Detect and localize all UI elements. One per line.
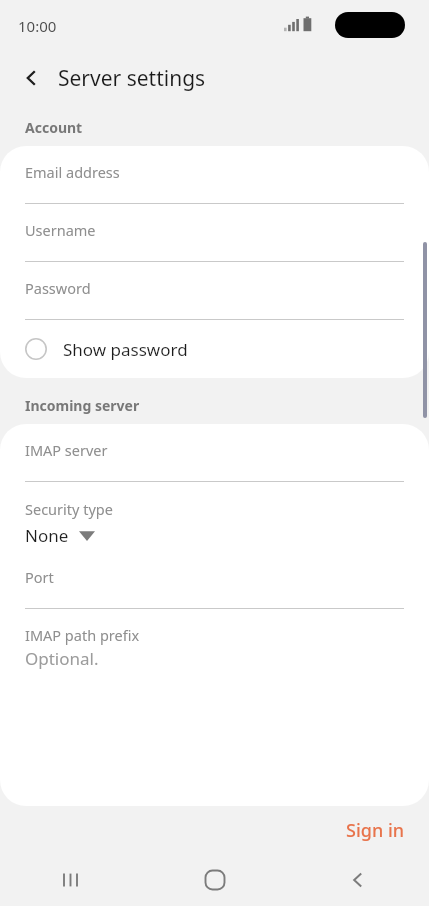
- staticText: Username: [25, 220, 96, 240]
- button[interactable]: Sign in: [322, 810, 429, 851]
- button[interactable]: Back: [14, 60, 50, 96]
- staticText: Security type: [25, 499, 113, 519]
- staticText: Email address: [25, 162, 120, 182]
- staticText: Password: [25, 278, 91, 298]
- staticText: IMAP server: [25, 440, 108, 460]
- button[interactable]: Password: [25, 262, 404, 320]
- staticText: Account: [25, 118, 83, 137]
- staticText: 10:00: [18, 16, 57, 36]
- button[interactable]: Username: [25, 204, 404, 262]
- button[interactable]: Home: [143, 854, 286, 906]
- staticText: Incoming server: [25, 396, 140, 415]
- staticText: Port: [25, 567, 54, 587]
- staticText: Server settings: [58, 64, 206, 93]
- button[interactable]: Recent apps: [0, 854, 143, 906]
- button[interactable]: Email address: [25, 146, 404, 204]
- staticText: IMAP path prefix: [25, 625, 140, 645]
- button[interactable]: IMAP server: [25, 424, 404, 482]
- staticText: Optional.: [25, 647, 99, 670]
- staticText: None: [25, 524, 69, 547]
- staticText: Sign in: [346, 818, 405, 843]
- button[interactable]: Security type: [25, 482, 404, 547]
- button[interactable]: Back: [286, 854, 429, 906]
- staticText: Show password: [63, 338, 188, 361]
- button[interactable]: Show password: [25, 320, 404, 378]
